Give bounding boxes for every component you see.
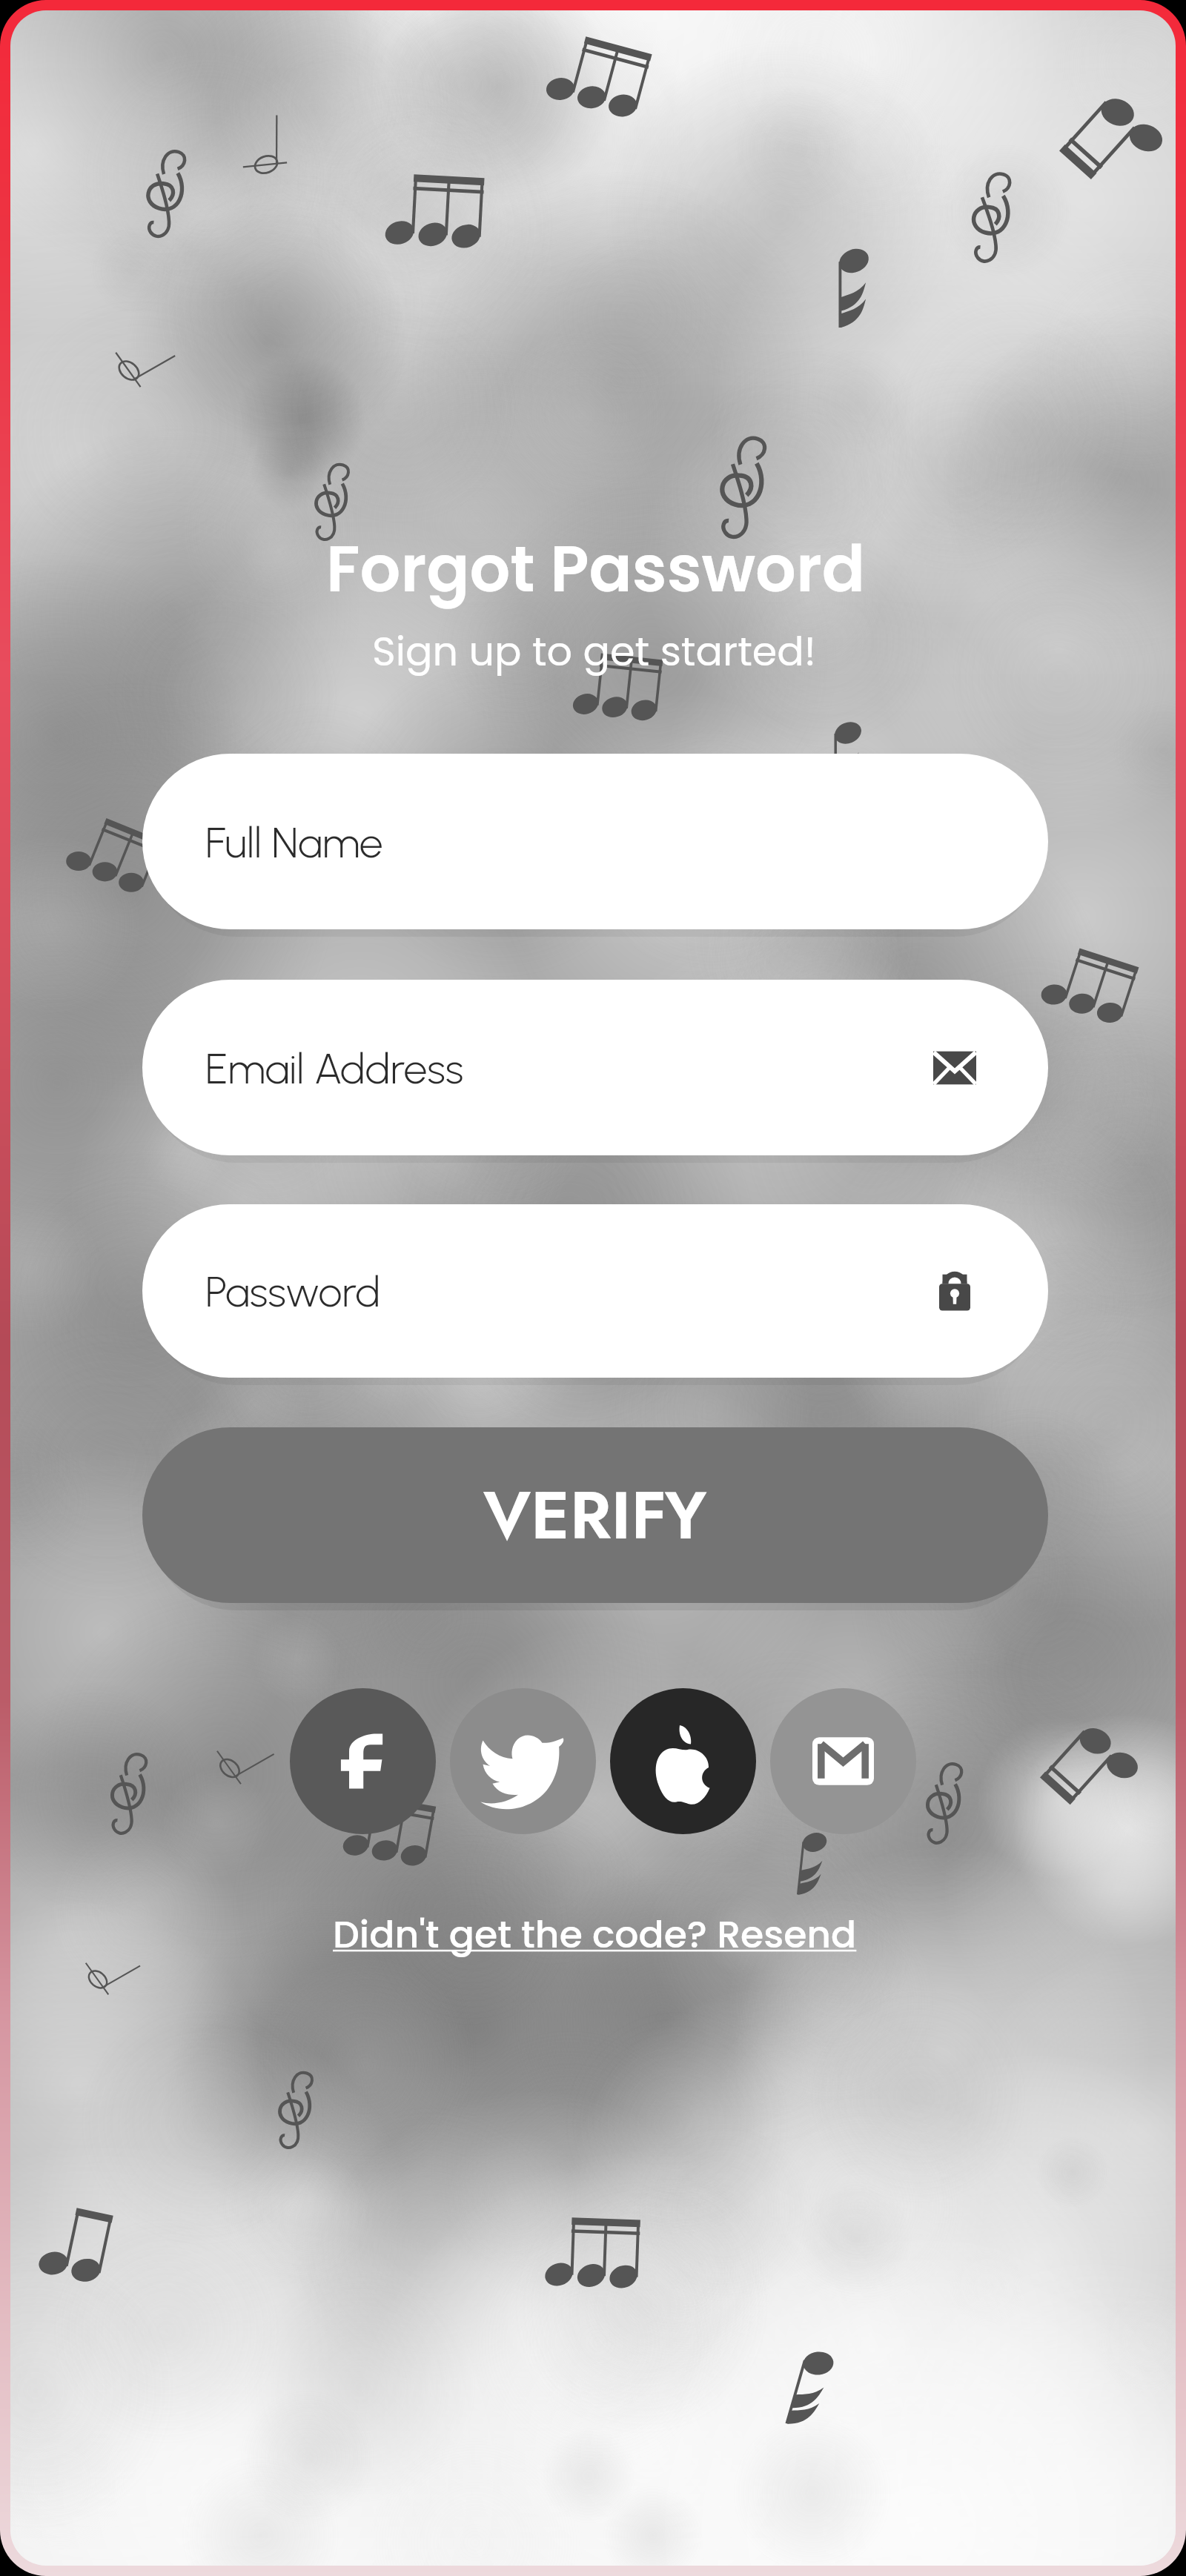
button[interactable]: Sign in with Facebook [290, 1688, 436, 1834]
button[interactable]: Email address [921, 1035, 988, 1101]
staticText: Sign up to get started! [372, 623, 816, 680]
staticText: Password [205, 1267, 381, 1317]
staticText: Forgot Password [326, 525, 866, 614]
button[interactable]: Sign in with Gmail [770, 1688, 916, 1834]
staticText: Didn't get the code? Resend [333, 1908, 857, 1961]
button[interactable]: Password [142, 1204, 1048, 1378]
button[interactable]: Password [921, 1258, 988, 1324]
staticText: Full Name [205, 817, 383, 868]
button[interactable]: Email Address [142, 980, 1048, 1155]
button[interactable]: Sign in with Apple [610, 1688, 756, 1834]
button[interactable]: VERIFY [142, 1427, 1048, 1603]
staticText: VERIFY [483, 1467, 707, 1564]
staticText: Email Address [205, 1043, 464, 1094]
button[interactable]: Full Name [142, 754, 1048, 929]
button[interactable]: Didn't get the code? Resend [328, 1905, 861, 1964]
button[interactable]: Sign in with Twitter [450, 1688, 596, 1834]
